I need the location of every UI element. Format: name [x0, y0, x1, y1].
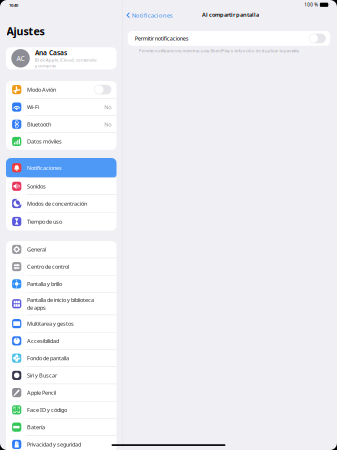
staticText: No	[104, 120, 111, 128]
staticText: Pantalla de inicio y biblioteca de apps	[27, 296, 94, 311]
staticText: Sonidos	[27, 182, 46, 190]
button[interactable]: Batería	[6, 419, 116, 436]
button[interactable]: Pantalla de inicio y biblioteca de apps	[6, 293, 116, 315]
staticText: Face ID y código	[27, 406, 67, 414]
button[interactable]: Permitir notificaciones	[128, 31, 330, 46]
staticText: Batería	[27, 423, 45, 431]
staticText: Apple Pencil	[27, 389, 56, 396]
staticText: Al compartir pantalla	[202, 11, 259, 18]
button[interactable]: Fondo de pantalla	[6, 350, 116, 367]
staticText: Datos móviles	[27, 138, 62, 145]
staticText: ID de Apple, iCloud, contenido y compras	[35, 57, 97, 68]
button[interactable]: Face ID y código	[6, 401, 116, 418]
button[interactable]: Multitarea y gestos	[6, 315, 116, 332]
staticText: No	[104, 103, 111, 111]
staticText: Privacidad y seguridad	[27, 441, 81, 448]
button[interactable]: Tiempo de uso	[6, 212, 116, 230]
staticText: AC	[17, 54, 25, 63]
staticText: 10:40	[9, 2, 18, 8]
button[interactable]: Privacidad y seguridad	[6, 436, 116, 450]
button[interactable]: Pantalla y brillo	[6, 275, 116, 292]
staticText: Centro de control	[27, 263, 69, 270]
button[interactable]: Modos de concentración	[6, 195, 116, 212]
button[interactable]: Siri y Buscar	[6, 367, 116, 384]
staticText: Pantalla y brillo	[27, 280, 62, 288]
button[interactable]: Notificaciones	[6, 158, 116, 177]
button[interactable]: General	[6, 241, 116, 258]
button[interactable]: Wi-Fi	[6, 99, 116, 115]
button[interactable]: Notificaciones	[123, 10, 176, 20]
button[interactable]: Apple Pencil	[6, 384, 116, 401]
staticText: General	[27, 246, 46, 253]
button[interactable]: Sonidos	[6, 178, 116, 194]
staticText: Bluetooth	[27, 120, 51, 128]
staticText: Ajustes	[6, 24, 44, 38]
staticText: Siri y Buscar	[27, 372, 57, 379]
button[interactable]: Datos móviles	[6, 133, 116, 150]
staticText: Fondo de pantalla	[27, 354, 69, 362]
staticText: Permitir notificaciones	[135, 35, 189, 42]
button[interactable]: Modo Avión	[6, 81, 116, 98]
staticText: Accesibilidad	[27, 337, 59, 345]
button[interactable]: Accesibilidad	[6, 332, 116, 349]
button[interactable]: Centro de control	[6, 258, 116, 275]
staticText: Multitarea y gestos	[27, 320, 74, 327]
staticText: Wi-Fi	[27, 103, 39, 111]
staticText: Notificaciones	[27, 164, 62, 171]
staticText: Permite notificaciones mientras usas Sha…	[138, 48, 299, 53]
button[interactable]: Bluetooth	[6, 116, 116, 133]
staticText: Modo Avión	[27, 86, 56, 93]
staticText: 100 %	[304, 2, 318, 8]
staticText: Modos de concentración	[27, 200, 87, 207]
staticText: Notificaciones	[132, 11, 173, 19]
staticText: Tiempo de uso	[27, 218, 62, 225]
button[interactable]: AC	[6, 47, 116, 69]
staticText: Ana Casas	[35, 48, 67, 57]
